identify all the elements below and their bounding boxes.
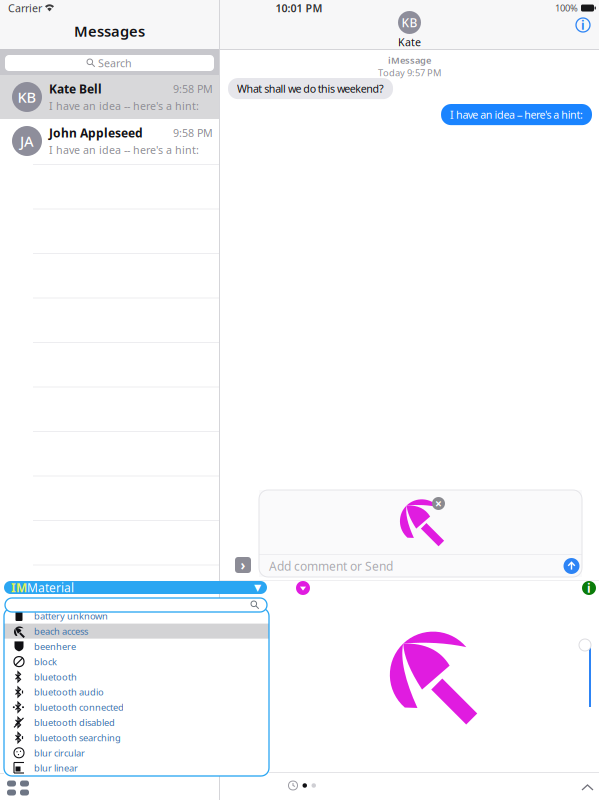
staticText: Messages bbox=[74, 21, 145, 41]
staticText: What shall we do this weekend? bbox=[237, 81, 384, 96]
staticText: beenhere bbox=[34, 640, 76, 653]
button[interactable]: Sticker pack options bbox=[293, 578, 313, 598]
staticText: › bbox=[240, 556, 245, 574]
staticText: I have an idea -- here's a hint: bbox=[450, 107, 583, 122]
button[interactable]: bluetooth bbox=[4, 669, 269, 684]
button[interactable]: Details bbox=[570, 12, 596, 38]
staticText: i bbox=[581, 17, 585, 33]
staticText: block bbox=[34, 655, 57, 668]
button[interactable]: Recently used bbox=[288, 780, 298, 791]
staticText: bluetooth connected bbox=[34, 701, 124, 713]
staticText: blur linear bbox=[34, 762, 78, 774]
staticText: × bbox=[435, 495, 442, 511]
staticText: bluetooth disabled bbox=[34, 716, 115, 729]
button[interactable]: KB bbox=[0, 75, 219, 119]
staticText: 100% bbox=[555, 2, 578, 14]
button[interactable]: Remove sticker bbox=[430, 495, 447, 512]
staticText: Search bbox=[98, 56, 132, 70]
button[interactable]: JA bbox=[0, 119, 219, 163]
button[interactable]: bluetooth audio bbox=[4, 684, 269, 700]
button[interactable]: beenhere bbox=[4, 639, 269, 654]
button[interactable]: Info bbox=[579, 578, 599, 598]
button[interactable]: App drawer bbox=[3, 775, 33, 800]
staticText: IM bbox=[11, 579, 27, 595]
button[interactable]: Expand bbox=[575, 777, 599, 798]
staticText: iMessage bbox=[388, 54, 431, 66]
staticText: KB bbox=[401, 14, 417, 30]
staticText: blur circular bbox=[34, 747, 85, 759]
staticText: Add comment or Send bbox=[269, 558, 393, 574]
button[interactable]: Send bbox=[561, 555, 582, 576]
staticText: bluetooth audio bbox=[34, 686, 104, 698]
button[interactable]: beach access bbox=[4, 624, 269, 639]
staticText: KB bbox=[17, 87, 36, 107]
staticText: bluetooth searching bbox=[34, 731, 121, 744]
staticText: Material bbox=[27, 579, 74, 595]
staticText: I have an idea -- here's a hint: bbox=[49, 99, 199, 113]
button[interactable]: blur linear bbox=[4, 760, 269, 776]
staticText: Kate Bell bbox=[49, 81, 102, 97]
staticText: battery unknown bbox=[34, 610, 108, 622]
staticText: Today 9:57 PM bbox=[378, 66, 441, 79]
staticText: i bbox=[587, 580, 591, 596]
staticText: Carrier bbox=[8, 1, 42, 15]
button[interactable]: battery unknown bbox=[4, 608, 269, 624]
button[interactable]: bluetooth connected bbox=[4, 700, 269, 715]
staticText: 9:58 PM bbox=[173, 82, 213, 96]
staticText: Kate bbox=[398, 35, 421, 49]
button[interactable]: IM bbox=[4, 581, 267, 594]
button[interactable]: block bbox=[4, 654, 269, 669]
staticText: 9:58 PM bbox=[173, 126, 213, 140]
staticText: bluetooth bbox=[34, 671, 77, 683]
staticText: 10:01 PM bbox=[275, 1, 322, 15]
button[interactable]: bluetooth searching bbox=[4, 730, 269, 745]
staticText: I have an idea -- here's a hint: bbox=[49, 143, 199, 157]
button[interactable]: Search bbox=[5, 55, 214, 71]
button[interactable]: blur circular bbox=[4, 745, 269, 760]
staticText: JA bbox=[20, 131, 34, 151]
staticText: beach access bbox=[34, 625, 88, 637]
button[interactable]: Show app drawer bbox=[231, 553, 255, 577]
button[interactable]: bluetooth disabled bbox=[4, 715, 269, 730]
staticText: ▼ bbox=[254, 582, 261, 593]
staticText: John Appleseed bbox=[49, 125, 143, 141]
